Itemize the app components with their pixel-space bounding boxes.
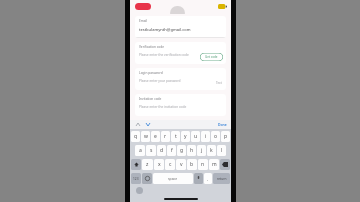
button[interactable]: Return [213, 173, 230, 184]
button[interactable]: Get code [200, 53, 223, 61]
button[interactable]: n [198, 159, 208, 170]
staticText: x [158, 161, 161, 168]
staticText: j [201, 147, 203, 154]
button[interactable]: t [171, 131, 180, 142]
button[interactable]: m [209, 159, 219, 170]
button[interactable]: Invitation code [135, 94, 226, 116]
staticText: Done [218, 122, 227, 127]
button[interactable]: a [135, 145, 145, 156]
button[interactable]: Backspace [220, 159, 230, 170]
button[interactable]: Recording indicator [135, 3, 151, 10]
staticText: 123 [133, 177, 139, 181]
button[interactable]: Switch keyboard [136, 187, 143, 194]
staticText: v [180, 161, 183, 168]
staticText: w [144, 133, 148, 140]
staticText: Email [139, 19, 148, 23]
staticText: Please enter the invitation code [139, 105, 187, 109]
staticText: o [214, 133, 218, 140]
button[interactable]: r [161, 131, 170, 142]
button[interactable]: Login password [135, 68, 226, 90]
staticText: Please enter the verification code [139, 53, 189, 57]
button[interactable]: Verification code [135, 42, 226, 64]
button[interactable]: k [207, 145, 216, 156]
button[interactable]: Email [135, 16, 226, 38]
button[interactable]: g [177, 145, 186, 156]
staticText: p [224, 133, 228, 140]
button[interactable]: . [204, 173, 212, 184]
staticText: space [168, 176, 178, 181]
staticText: Get code [205, 55, 218, 59]
button[interactable]: j [197, 145, 206, 156]
button[interactable]: Emoji [142, 173, 152, 184]
staticText: c [169, 161, 172, 168]
staticText: return [217, 177, 227, 181]
staticText: i [205, 133, 207, 140]
button[interactable]: z [142, 159, 153, 170]
button[interactable]: i [201, 131, 210, 142]
staticText: h [190, 147, 194, 154]
staticText: testkulamynth@gmail.com [139, 27, 191, 32]
button[interactable]: p [221, 131, 230, 142]
button[interactable]: f [167, 145, 176, 156]
button[interactable]: Done [218, 122, 227, 127]
button[interactable]: Numbers and symbols [131, 173, 141, 184]
staticText: a [139, 147, 142, 154]
button[interactable]: space [153, 173, 193, 184]
button[interactable]: h [187, 145, 196, 156]
staticText: Text [216, 81, 222, 85]
staticText: y [184, 133, 187, 140]
staticText: u [194, 133, 198, 140]
button[interactable]: x [154, 159, 164, 170]
staticText: d [160, 147, 164, 154]
staticText: g [180, 147, 184, 154]
staticText: b [190, 161, 194, 168]
staticText: s [150, 147, 153, 154]
staticText: k [210, 147, 213, 154]
staticText: Please enter your password [139, 79, 181, 83]
button[interactable]: Dictation [194, 173, 203, 184]
button[interactable]: c [165, 159, 175, 170]
staticText: z [146, 161, 149, 168]
button[interactable]: d [157, 145, 166, 156]
staticText: r [164, 133, 167, 140]
staticText: n [201, 161, 205, 168]
button[interactable]: b [187, 159, 197, 170]
staticText: t [175, 133, 177, 140]
staticText: m [212, 161, 217, 168]
staticText: l [221, 147, 223, 154]
button[interactable]: w [141, 131, 150, 142]
button[interactable]: Next field [144, 121, 151, 128]
button[interactable]: y [181, 131, 190, 142]
button[interactable]: s [146, 145, 156, 156]
button[interactable]: Shift [131, 159, 141, 170]
button[interactable]: q [131, 131, 140, 142]
other: Battery low power mode [218, 4, 227, 9]
staticText: e [154, 133, 157, 140]
button[interactable]: l [217, 145, 226, 156]
button[interactable]: u [191, 131, 200, 142]
button[interactable]: e [151, 131, 160, 142]
staticText: Verification code [139, 45, 164, 49]
staticText: . [207, 176, 209, 182]
staticText: f [171, 147, 173, 154]
staticText: Login password [139, 71, 163, 75]
button[interactable]: v [176, 159, 186, 170]
button[interactable]: Show password [216, 81, 222, 85]
staticText: Invitation code [139, 97, 162, 101]
button[interactable]: Previous field [134, 121, 141, 128]
button[interactable]: o [211, 131, 220, 142]
staticText: q [134, 133, 138, 140]
